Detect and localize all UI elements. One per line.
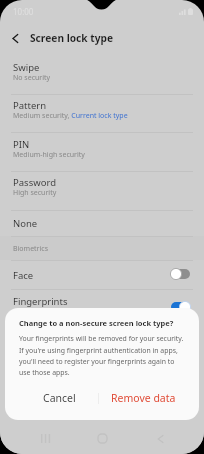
button[interactable] [0, 289, 204, 318]
staticText: Your fingerprints will be removed for yo… [19, 334, 185, 377]
staticText: Swipe [13, 61, 40, 74]
staticText: PIN [13, 138, 30, 151]
staticText: Password [13, 176, 56, 189]
staticText: Fingerprints [13, 295, 68, 308]
button[interactable] [0, 94, 204, 132]
staticText: Medium security, Current lock type [13, 111, 128, 121]
staticText: Biometrics [13, 244, 49, 254]
staticText: High security [13, 188, 57, 198]
button[interactable] [0, 171, 204, 210]
staticText: No security [13, 73, 51, 83]
staticText: None [13, 217, 38, 230]
staticText: Medium-high security [13, 150, 85, 160]
staticText: Screen lock type [30, 31, 114, 45]
staticText: Pattern [13, 99, 47, 112]
staticText: Face [13, 269, 34, 282]
staticText: Change to a non-secure screen lock type? [19, 318, 174, 328]
button[interactable]: Cancel [5, 385, 98, 411]
staticText: Cancel [43, 391, 76, 405]
staticText: Remove data [111, 391, 176, 405]
button[interactable] [0, 132, 204, 171]
button[interactable] [0, 56, 204, 93]
staticText: 10:00 [13, 6, 34, 17]
button[interactable] [0, 210, 204, 236]
button[interactable]: Navigate up [0, 22, 30, 54]
button[interactable] [0, 260, 204, 289]
button[interactable]: Remove data [99, 385, 199, 411]
